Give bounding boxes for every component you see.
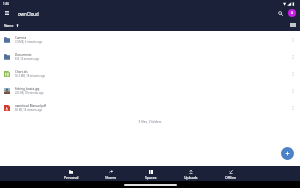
staticText: Camera (15, 36, 27, 40)
button[interactable]: More options (287, 68, 299, 80)
staticText: A (291, 11, 293, 15)
staticText: 60 KB, 14 minutes ago (15, 108, 43, 112)
staticText: 3.9 MB, 5 minutes ago (15, 40, 43, 44)
staticText: 225 KB, 18 minutes ago (15, 91, 44, 95)
staticText: 1:36 (3, 2, 9, 6)
button[interactable]: Add content (281, 147, 294, 160)
button[interactable]: owncloud Manual.pdf (0, 99, 300, 116)
button[interactable]: Documents (0, 48, 300, 65)
staticText: Shares (105, 175, 117, 180)
staticText: Chart.xls (15, 70, 28, 74)
staticText: 50.5 MB, 18 minutes ago (15, 74, 46, 78)
button[interactable]: Personal (51, 166, 91, 180)
button[interactable]: Uploads (171, 166, 211, 180)
button[interactable]: More options (287, 85, 299, 97)
button[interactable]: Search (274, 7, 286, 19)
staticText: 3 files, 2 folders (0, 120, 300, 124)
button[interactable]: Open navigation drawer (1, 7, 13, 19)
button[interactable]: Name (3, 22, 20, 28)
staticText: Uploads (184, 175, 198, 180)
staticText: fishing_boats.jpg (15, 87, 40, 91)
staticText: Personal (64, 175, 79, 180)
staticText: Offline (225, 175, 237, 180)
button[interactable]: More options (287, 34, 299, 46)
staticText: Documents (15, 53, 32, 57)
button[interactable]: Camera (0, 31, 300, 48)
button[interactable]: Offline (211, 166, 251, 180)
staticText: Spaces (145, 175, 157, 180)
staticText: Name (4, 23, 14, 27)
button[interactable]: More options (287, 102, 299, 114)
button[interactable]: fishing_boats.jpg (0, 82, 300, 99)
staticText: ownCloud (18, 11, 39, 17)
button[interactable]: More options (287, 51, 299, 63)
button[interactable]: Spaces (131, 166, 171, 180)
button[interactable]: Chart.xls (0, 65, 300, 82)
button[interactable]: Switch view mode (287, 19, 299, 31)
staticText: 8 B, 14 minutes ago (15, 57, 40, 61)
button[interactable]: Shares (91, 166, 131, 180)
staticText: owncloud Manual.pdf (15, 104, 47, 108)
button[interactable]: Account (286, 7, 298, 19)
